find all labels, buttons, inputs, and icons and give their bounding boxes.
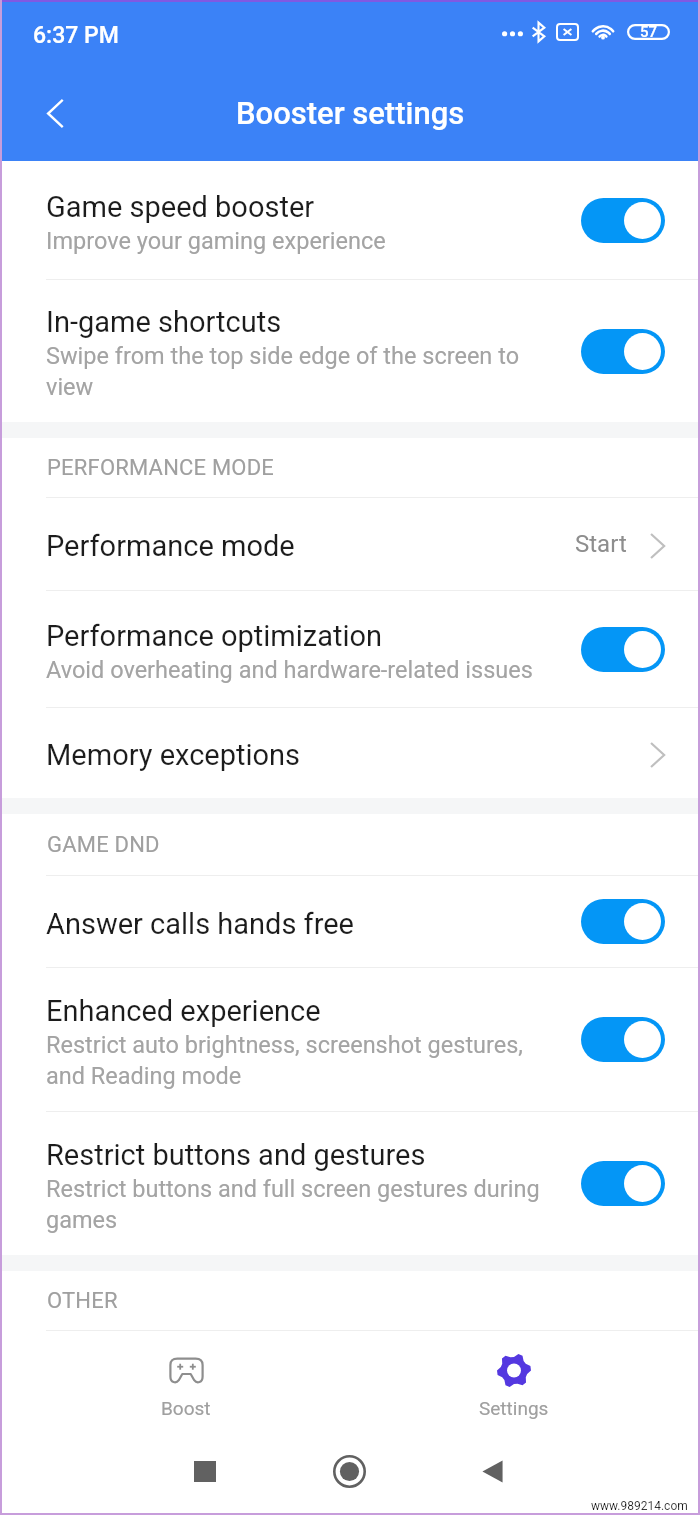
button[interactable]: Restrict buttons and gestures: [0, 1112, 700, 1255]
staticText: Enhanced experience: [46, 994, 321, 1028]
staticText: GAME DND: [47, 832, 160, 858]
staticText: OTHER: [47, 1288, 118, 1314]
button[interactable]: Performance mode: [0, 498, 700, 590]
button[interactable]: Toggle: [581, 627, 665, 672]
button[interactable]: Home: [278, 1429, 421, 1514]
button[interactable]: Toggle: [581, 1161, 665, 1206]
staticText: Improve your gaming experience: [46, 227, 386, 255]
staticText: Avoid overheating and hardware-related i…: [46, 656, 533, 684]
button[interactable]: Game speed booster: [0, 161, 700, 279]
button[interactable]: Back: [421, 1429, 564, 1514]
button[interactable]: Toggle: [581, 198, 665, 243]
button[interactable]: Toggle: [581, 1017, 665, 1062]
button[interactable]: In-game shortcuts: [0, 280, 700, 422]
staticText: Restrict buttons and full screen gesture…: [46, 1175, 546, 1234]
button[interactable]: Toggle: [581, 899, 665, 944]
staticText: Performance optimization: [46, 619, 383, 653]
staticText: Game speed booster: [46, 190, 315, 224]
staticText: Boost: [161, 1397, 211, 1419]
button[interactable]: Toggle: [581, 329, 665, 374]
button[interactable]: Enhanced experience: [0, 968, 700, 1111]
button[interactable]: Back: [26, 84, 84, 142]
staticText: Restrict auto brightness, screenshot ges…: [46, 1031, 546, 1090]
staticText: Memory exceptions: [46, 738, 301, 772]
staticText: Answer calls hands free: [46, 907, 354, 941]
button[interactable]: Boost: [115, 1331, 257, 1429]
button[interactable]: Recent apps: [132, 1429, 278, 1514]
staticText: Start: [575, 530, 627, 558]
staticText: Performance mode: [46, 529, 295, 563]
staticText: 57: [640, 23, 658, 41]
staticText: In-game shortcuts: [46, 305, 282, 339]
staticText: Settings: [479, 1397, 549, 1419]
button[interactable]: Answer calls hands free: [0, 876, 700, 967]
staticText: 6:37 PM: [33, 22, 119, 49]
button[interactable]: Performance optimization: [0, 591, 700, 707]
staticText: Swipe from the top side edge of the scre…: [46, 342, 546, 401]
staticText: Restrict buttons and gestures: [46, 1138, 426, 1172]
staticText: PERFORMANCE MODE: [47, 455, 275, 481]
button[interactable]: Settings: [443, 1331, 585, 1429]
staticText: Booster settings: [236, 95, 465, 131]
staticText: www.989214.com: [591, 1499, 688, 1513]
button[interactable]: Memory exceptions: [0, 708, 700, 798]
